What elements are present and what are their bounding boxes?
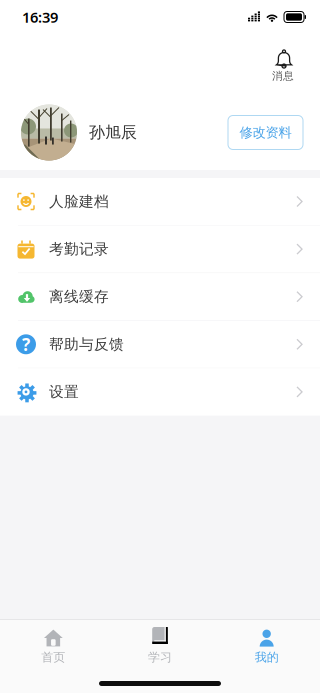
button[interactable]: 修改资料 [228,115,303,149]
button[interactable]: 消息 [264,45,302,86]
staticText: 人脸建档 [49,192,109,210]
staticText: 首页 [41,650,65,665]
button[interactable]: 学习 [107,620,213,666]
button[interactable]: 离线缓存 [0,273,320,320]
staticText: 学习 [148,650,172,665]
staticText: 修改资料 [239,124,291,141]
button[interactable]: 人脸建档 [0,178,320,225]
staticText: 离线缓存 [49,288,109,306]
staticText: 帮助与反馈 [49,335,124,353]
button[interactable]: 我的 [213,620,320,666]
button[interactable]: 考勤记录 [0,226,320,273]
staticText: 消息 [272,69,294,82]
staticText: 考勤记录 [49,240,109,258]
button[interactable]: 设置 [0,368,320,415]
staticText: 孙旭辰 [89,123,137,142]
staticText: ? [22,333,30,356]
staticText: 设置 [49,383,79,401]
button[interactable]: ? [0,321,320,368]
button[interactable]: 首页 [0,620,107,666]
staticText: 我的 [255,650,279,665]
staticText: 16:39 [22,7,58,27]
